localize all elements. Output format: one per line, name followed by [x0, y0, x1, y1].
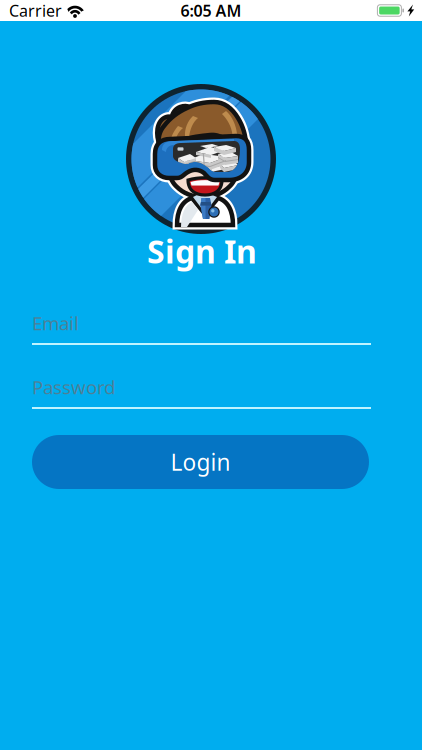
staticText: Sign In: [147, 230, 257, 272]
staticText: 6:05 AM: [180, 0, 241, 21]
button[interactable]: Login: [32, 435, 369, 489]
staticText: Email: [32, 311, 79, 335]
staticText: Password: [32, 375, 115, 399]
staticText: Carrier: [9, 0, 62, 21]
staticText: Login: [170, 447, 230, 477]
